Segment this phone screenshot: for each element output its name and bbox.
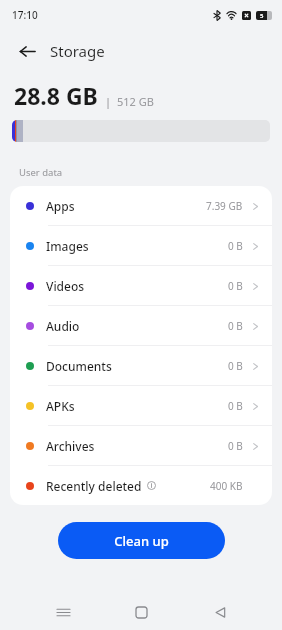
staticText: 0 B bbox=[228, 239, 243, 253]
button[interactable]: Home bbox=[125, 596, 157, 628]
button[interactable]: Videos bbox=[10, 266, 272, 305]
button[interactable]: Archives bbox=[10, 426, 272, 465]
staticText: Storage bbox=[50, 41, 105, 61]
staticText: Clean up bbox=[114, 532, 169, 550]
button[interactable]: Recently deleted bbox=[10, 466, 272, 505]
staticText: APKs bbox=[46, 398, 75, 414]
staticText: 28.8 GB bbox=[14, 80, 98, 111]
staticText: Audio bbox=[46, 318, 80, 334]
staticText: 0 B bbox=[228, 359, 243, 373]
staticText: User data bbox=[19, 166, 63, 179]
button[interactable]: Apps bbox=[10, 186, 272, 225]
button[interactable]: Back bbox=[14, 38, 40, 64]
staticText: 0 B bbox=[228, 319, 243, 333]
staticText: Documents bbox=[46, 358, 112, 374]
staticText: Recently deleted bbox=[46, 478, 142, 494]
staticText: 0 B bbox=[228, 279, 243, 293]
button[interactable]: Clean up bbox=[58, 522, 225, 559]
staticText: 7.39 GB bbox=[206, 199, 243, 213]
staticText: 5 bbox=[260, 12, 264, 20]
staticText: Images bbox=[46, 238, 89, 254]
staticText: 512 GB bbox=[117, 94, 154, 109]
staticText: Videos bbox=[46, 278, 85, 294]
button[interactable]: APKs bbox=[10, 386, 272, 425]
button[interactable]: Documents bbox=[10, 346, 272, 385]
staticText: 0 B bbox=[228, 399, 243, 413]
staticText: Apps bbox=[46, 198, 75, 214]
staticText: 17:10 bbox=[12, 8, 38, 22]
staticText: | bbox=[105, 94, 112, 109]
staticText: 0 B bbox=[228, 439, 243, 453]
button[interactable]: Recents bbox=[47, 596, 79, 628]
staticText: 400 KB bbox=[210, 479, 243, 493]
staticText: Archives bbox=[46, 438, 95, 454]
button[interactable]: Back bbox=[204, 596, 236, 628]
button[interactable]: Audio bbox=[10, 306, 272, 345]
button[interactable]: Images bbox=[10, 226, 272, 265]
